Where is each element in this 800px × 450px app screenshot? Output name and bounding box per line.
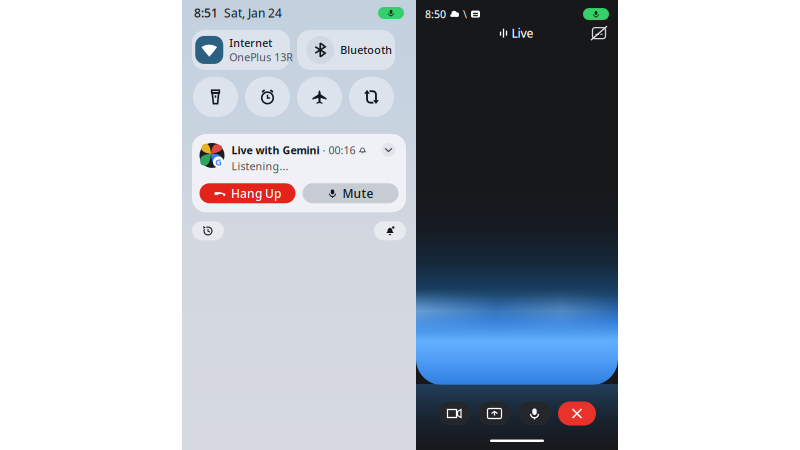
- staticText: \: [463, 7, 467, 21]
- staticText: 8:50: [425, 7, 446, 21]
- staticText: Mute: [342, 185, 373, 201]
- staticText: Live with Gemini: [231, 143, 319, 157]
- staticText: Listening...: [231, 159, 288, 173]
- staticText: Internet: [229, 36, 272, 50]
- staticText: 8:51: [194, 5, 218, 21]
- staticText: Sat, Jan 24: [218, 5, 282, 21]
- button[interactable]: Microphone: [518, 401, 551, 425]
- button[interactable]: Hang Up: [199, 183, 295, 203]
- button[interactable]: Airplane mode: [297, 77, 342, 117]
- staticText: Bluetooth: [340, 43, 392, 57]
- button[interactable]: Microphone active: [378, 7, 404, 19]
- button[interactable]: End call: [558, 401, 596, 425]
- button[interactable]: Camera: [438, 401, 471, 425]
- button[interactable]: Alarm: [245, 77, 290, 117]
- button[interactable]: Internet: [192, 30, 290, 70]
- button[interactable]: Auto rotate: [349, 77, 394, 117]
- button[interactable]: Microphone active: [583, 8, 609, 20]
- button[interactable]: Notification settings: [374, 221, 406, 240]
- button[interactable]: Bluetooth: [297, 30, 395, 70]
- staticText: OnePlus 13R: [229, 50, 293, 64]
- staticText: · 00:16: [322, 143, 355, 157]
- button[interactable]: History: [192, 221, 224, 240]
- button[interactable]: Mute: [302, 183, 398, 203]
- button[interactable]: Flashlight: [193, 77, 238, 117]
- staticText: G: [215, 156, 222, 168]
- button[interactable]: Turn off captions: [590, 25, 608, 41]
- button[interactable]: Share screen: [478, 401, 511, 425]
- staticText: Live: [511, 25, 533, 41]
- staticText: Hang Up: [231, 185, 281, 201]
- button[interactable]: Expand notification: [381, 143, 395, 157]
